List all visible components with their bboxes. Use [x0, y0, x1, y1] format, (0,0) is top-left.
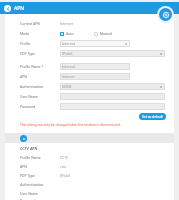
staticText: Authentication: [20, 182, 44, 187]
button[interactable]: PDP Type: [20, 171, 166, 180]
staticText: IPv4v6: [60, 173, 71, 178]
staticText: CCTV: [60, 155, 69, 160]
staticText: APN: [20, 164, 27, 169]
button[interactable]: Settings: [157, 6, 174, 23]
button[interactable]: IPv4v6: [60, 50, 165, 57]
staticText: APN: [14, 5, 25, 12]
button[interactable]: APN: [20, 162, 166, 171]
button[interactable]: Back: [4, 5, 11, 12]
staticText: NONE: [62, 84, 72, 89]
staticText: User Name: [20, 191, 38, 196]
staticText: CCTV APN: [20, 146, 38, 151]
button[interactable]: Internet: [60, 40, 130, 47]
staticText: internet: [62, 74, 75, 79]
button[interactable]: Profile Name: [20, 153, 166, 162]
button[interactable]: Authentication: [20, 180, 166, 189]
button[interactable]: Set as default: [139, 113, 166, 120]
staticText: PDP Type: [20, 173, 36, 178]
staticText: User Name: [20, 94, 38, 99]
staticText: Internet: [62, 41, 76, 46]
staticText: PDP Type: [20, 51, 36, 56]
button[interactable]: Internet: [60, 63, 130, 70]
button[interactable]: [60, 93, 165, 100]
staticText: Mode: [20, 31, 30, 36]
staticText: Internet: [60, 21, 74, 26]
button[interactable]: Add APN profile: [5, 133, 174, 143]
button[interactable]: NONE: [60, 83, 165, 90]
button[interactable]: internet: [60, 73, 130, 80]
staticText: Password: [20, 198, 36, 200]
button[interactable]: Manual: [94, 31, 112, 36]
staticText: Password: [20, 104, 36, 109]
button[interactable]: User Name: [20, 189, 166, 198]
staticText: Auto: [66, 31, 74, 36]
staticText: cctv: [60, 164, 67, 169]
staticText: Set as default: [142, 115, 163, 119]
button[interactable]: Password: [20, 198, 166, 200]
staticText: Profile Name: [20, 155, 41, 160]
staticText: Profile: [20, 41, 31, 46]
button[interactable]: Auto: [60, 31, 74, 36]
staticText: Manual: [100, 31, 112, 36]
staticText: IPv4v6: [62, 51, 73, 56]
button[interactable]: [60, 103, 165, 110]
staticText: Current APN: [20, 21, 40, 26]
staticText: Authentication: [20, 84, 44, 89]
staticText: Internet: [62, 64, 76, 69]
staticText: Profile Name *: [20, 64, 44, 69]
staticText: The setting can only be changed when the…: [20, 123, 121, 127]
staticText: APN: [20, 74, 27, 79]
